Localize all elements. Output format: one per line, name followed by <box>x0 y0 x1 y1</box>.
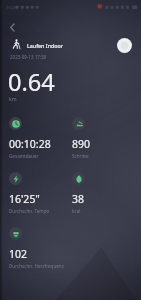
staticText: 2023-09-13 17:38 <box>10 54 47 60</box>
staticText: 00:10:28 <box>9 137 51 151</box>
staticText: Gesamtdauer <box>9 153 39 159</box>
staticText: 890 <box>72 137 91 151</box>
staticText: 16'25" <box>9 192 40 206</box>
staticText: 0.64 <box>8 66 55 98</box>
staticText: 102 <box>9 247 28 261</box>
button[interactable]: Map <box>117 38 132 53</box>
staticText: Durchschn. Herzfrequenz <box>9 263 64 269</box>
staticText: Laufen Indoor <box>27 42 64 49</box>
staticText: kcal <box>72 208 81 214</box>
staticText: km <box>9 95 17 102</box>
staticText: 38 <box>72 192 85 206</box>
button[interactable]: Back <box>2 17 22 37</box>
staticText: Schritte <box>72 153 89 159</box>
staticText: Durchschn. Tempo <box>9 208 50 214</box>
staticText: 10:28 <box>6 5 17 11</box>
